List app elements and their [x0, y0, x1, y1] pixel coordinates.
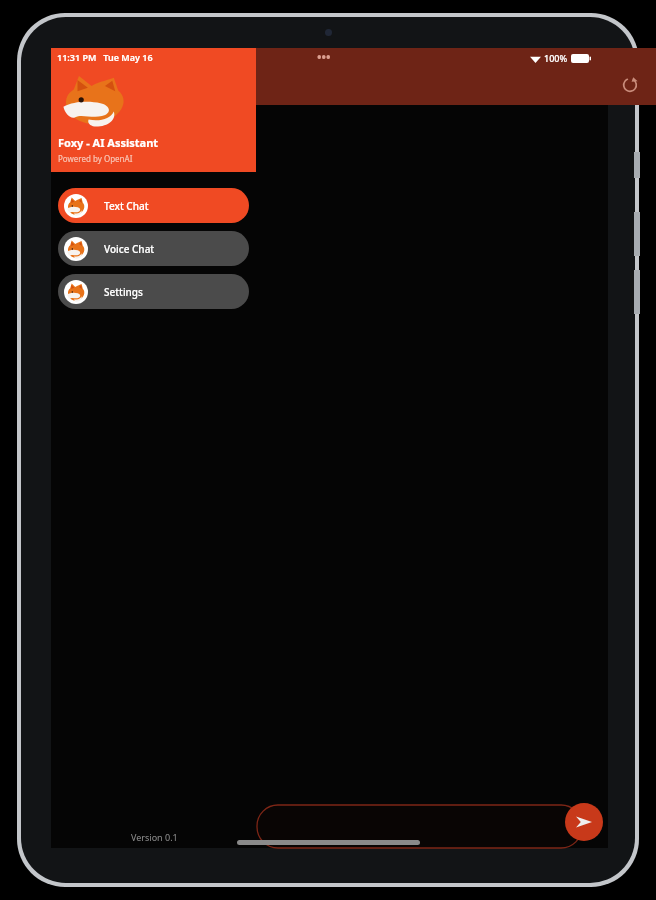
staticText: 100%	[544, 52, 568, 64]
staticText: Voice Chat	[104, 242, 155, 256]
staticText: Version 0.1	[131, 831, 178, 843]
button[interactable]: Text Chat	[58, 188, 249, 223]
staticText: Settings	[104, 285, 143, 299]
staticText: Powered by OpenAI	[58, 153, 133, 164]
button[interactable]: Settings	[58, 274, 249, 309]
button[interactable]: Voice Chat	[58, 231, 249, 266]
staticText: Text Chat	[104, 199, 149, 213]
staticText: •••	[317, 49, 331, 65]
button[interactable]: Refresh	[615, 70, 645, 100]
staticText: 11:31 PM Tue May 16	[57, 51, 153, 63]
button[interactable]: Message input	[257, 805, 582, 848]
button[interactable]: Send	[565, 803, 603, 841]
staticText: Foxy - AI Assistant	[58, 135, 159, 150]
